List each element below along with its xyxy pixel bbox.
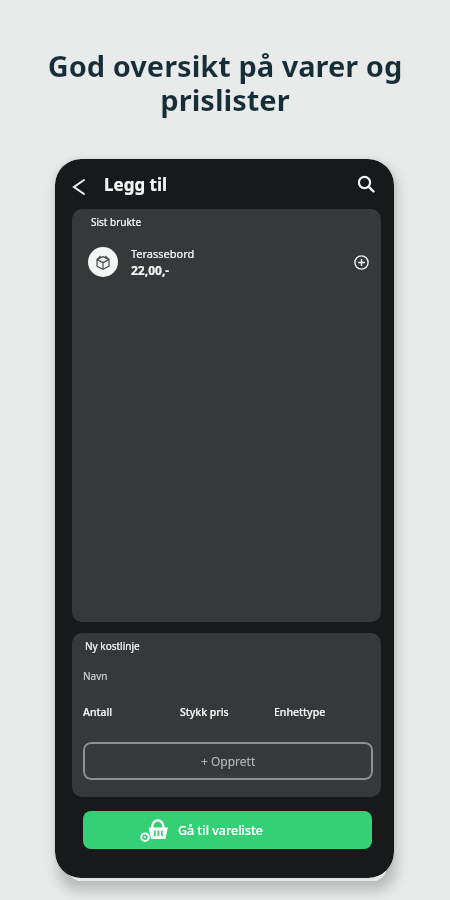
staticText: Legg til [104,173,168,196]
button[interactable] [349,167,383,201]
staticText: Sist brukte [91,215,142,229]
staticText: Navn [83,669,108,683]
staticText: Antall [83,705,113,719]
staticText: Gå til vareliste [178,822,264,839]
staticText: + Opprett [201,753,256,769]
button[interactable]: Terassebord [72,239,381,285]
staticText: Terassebord [131,246,195,261]
button[interactable]: + Opprett [83,742,373,780]
staticText: God oversikt på varer og prislister [0,46,450,119]
staticText: Enhettype [274,705,326,719]
button[interactable] [63,171,95,203]
staticText: Ny kostlinje [85,639,140,653]
staticText: Stykk pris [180,705,229,719]
staticText: 22,00,- [131,262,170,278]
button[interactable]: Gå til vareliste [83,811,372,849]
